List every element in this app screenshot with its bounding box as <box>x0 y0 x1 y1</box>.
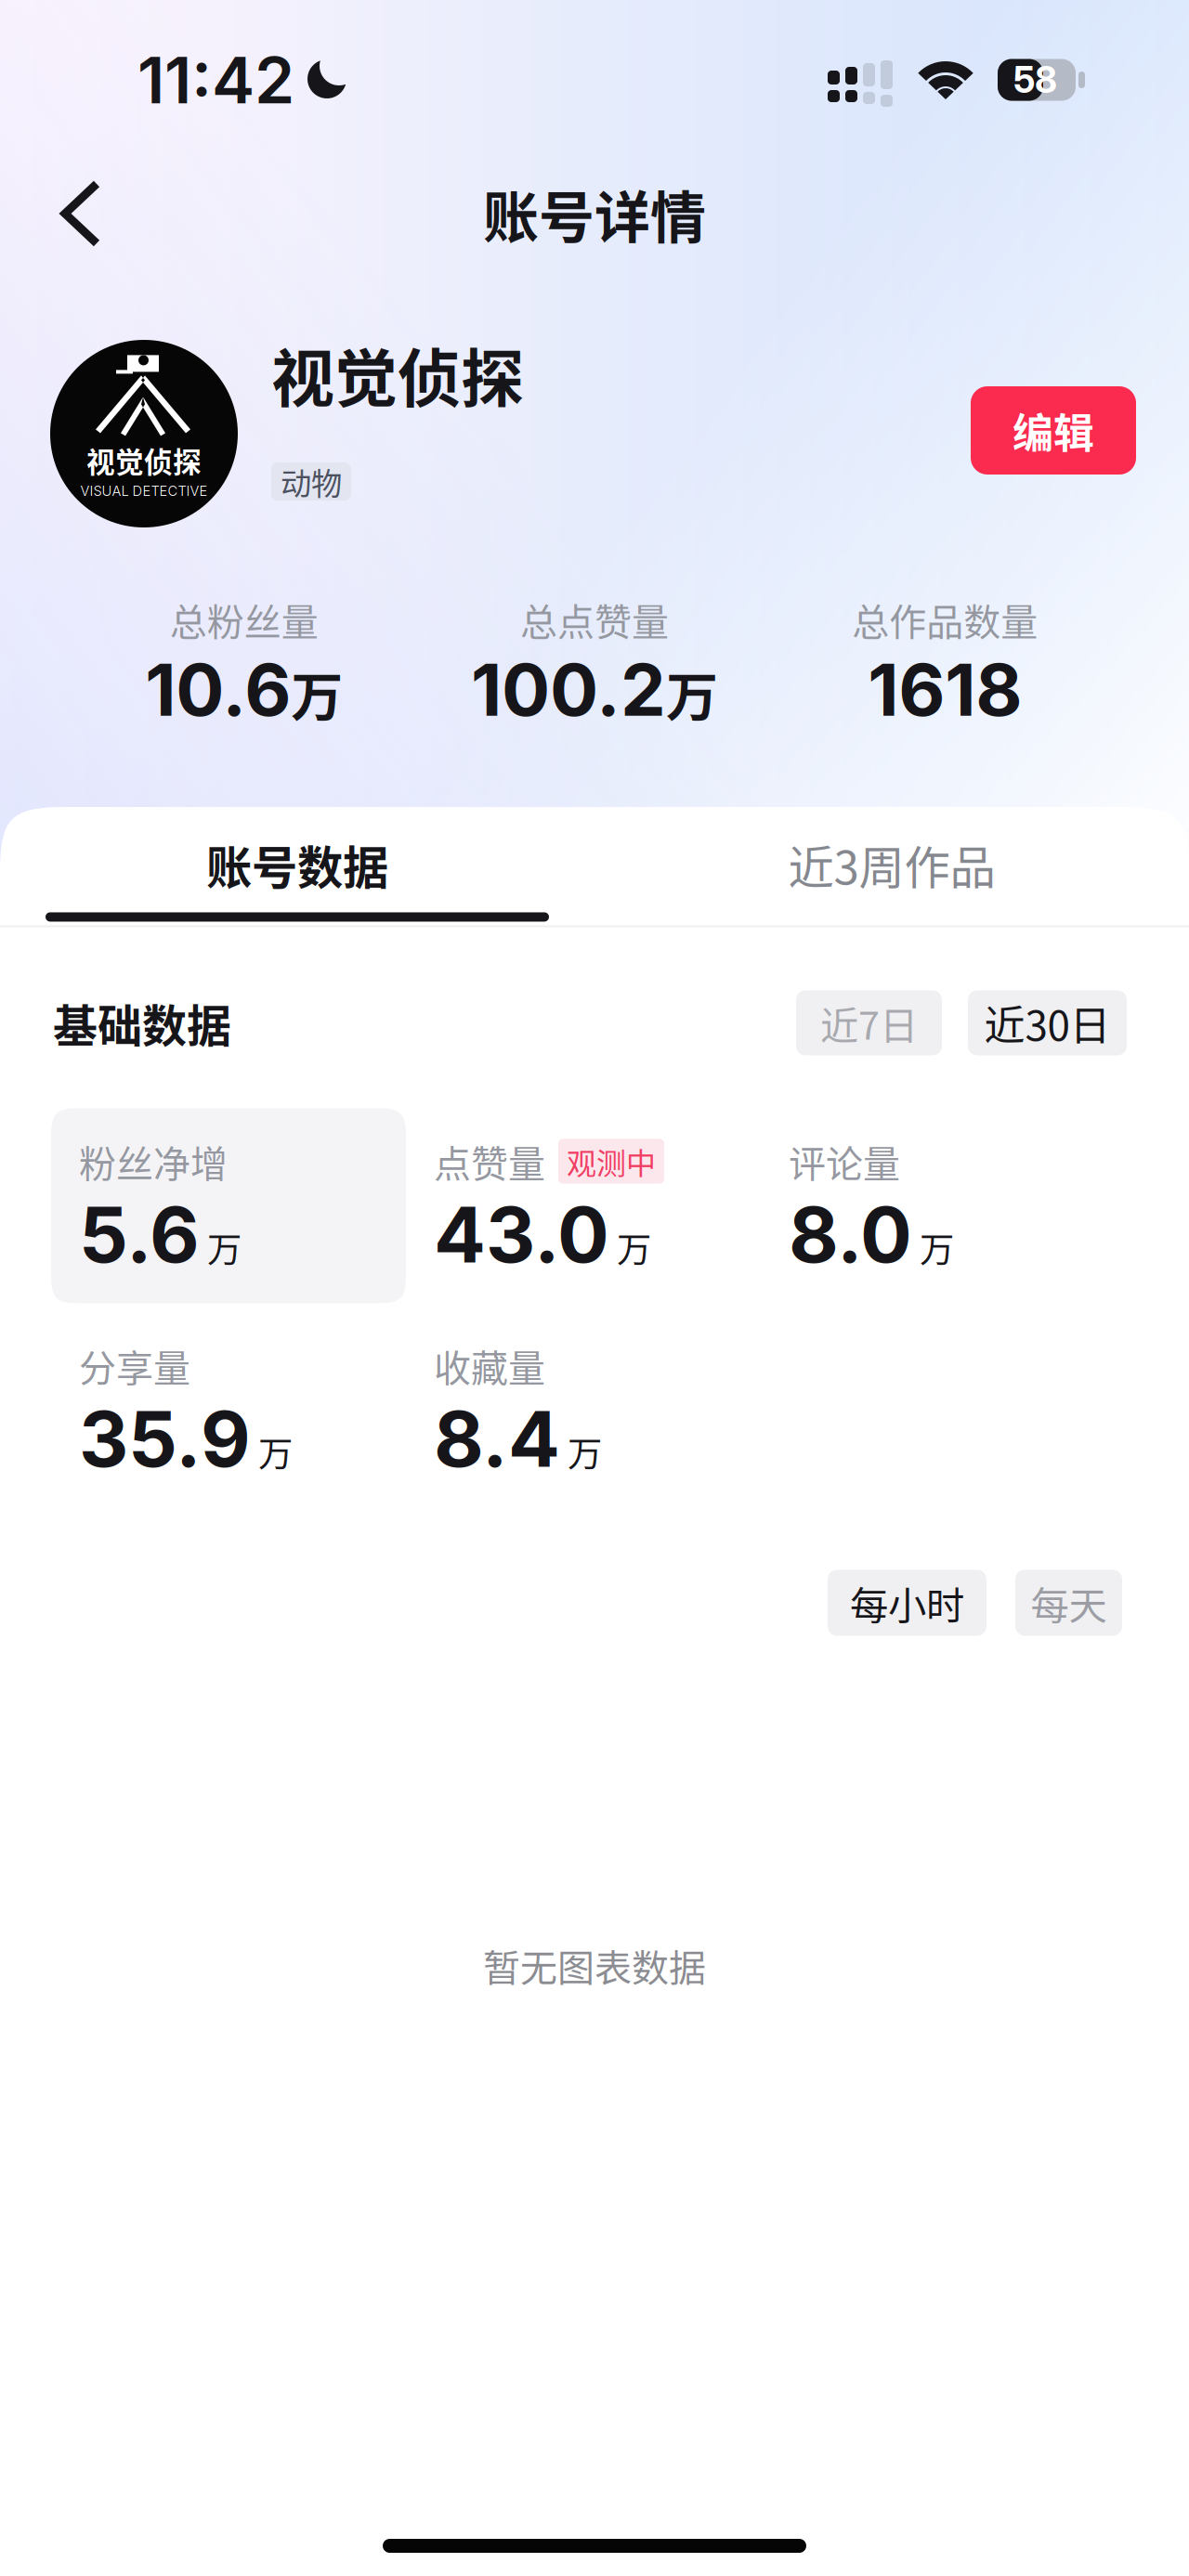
staticText: 每天 <box>1031 1575 1107 1631</box>
button[interactable]: 评论量 <box>761 1108 1116 1303</box>
staticText: 近30日 <box>984 993 1111 1052</box>
button[interactable]: 每小时 <box>828 1570 986 1636</box>
staticText: 动物 <box>281 459 342 504</box>
button[interactable]: 近30日 <box>968 990 1127 1055</box>
button[interactable]: 每天 <box>1015 1570 1122 1636</box>
button[interactable]: 分享量 <box>51 1313 406 1508</box>
staticText: 基础数据 <box>53 991 231 1055</box>
staticText: 万 <box>251 1427 293 1477</box>
staticText: 编辑 <box>1013 401 1094 460</box>
staticText: 10.6 <box>145 646 291 733</box>
staticText: 43.0 <box>434 1188 609 1281</box>
staticText: 分享量 <box>79 1339 190 1392</box>
staticText: 万 <box>666 656 718 731</box>
button[interactable]: 粉丝净增 <box>51 1108 406 1303</box>
staticText: VISUAL DETECTIVE <box>80 483 208 499</box>
staticText: 点赞量 <box>434 1134 545 1188</box>
staticText: 暂无图表数据 <box>483 1938 706 1992</box>
staticText: 35.9 <box>79 1392 251 1485</box>
staticText: 万 <box>609 1222 651 1272</box>
staticText: 万 <box>200 1222 242 1272</box>
staticText: 万 <box>912 1222 954 1272</box>
button[interactable]: 编辑 <box>971 386 1136 475</box>
staticText: 1618 <box>868 646 1022 733</box>
button[interactable]: 点赞量 <box>406 1108 761 1303</box>
staticText: 总点赞量 <box>520 592 669 646</box>
staticText: 近3周作品 <box>788 831 995 897</box>
staticText: 观测中 <box>567 1140 656 1183</box>
staticText: 账号详情 <box>483 173 706 254</box>
staticText: 58 <box>1013 58 1057 102</box>
staticText: 视觉侦探 <box>271 329 524 420</box>
staticText: 8.4 <box>434 1392 560 1485</box>
staticText: 8.0 <box>789 1188 912 1281</box>
staticText: 100.2 <box>471 646 666 733</box>
staticText: 账号数据 <box>206 831 388 897</box>
button[interactable]: 近3周作品 <box>594 807 1189 925</box>
staticText: 总作品数量 <box>852 592 1038 646</box>
staticText: 总粉丝量 <box>170 592 318 646</box>
button[interactable]: 收藏量 <box>406 1313 761 1508</box>
staticText: 近7日 <box>820 995 918 1051</box>
staticText: 收藏量 <box>434 1339 545 1392</box>
button[interactable]: 账号数据 <box>0 807 594 925</box>
staticText: 每小时 <box>850 1575 964 1631</box>
staticText: 5.6 <box>79 1188 200 1281</box>
staticText: 11:42 <box>137 41 294 119</box>
staticText: 万 <box>560 1427 602 1477</box>
staticText: 视觉侦探 <box>86 440 202 481</box>
staticText: 评论量 <box>789 1134 900 1188</box>
staticText: 万 <box>291 656 343 731</box>
button[interactable]: 近7日 <box>796 990 942 1055</box>
button[interactable]: 返回 <box>0 162 141 266</box>
staticText: 粉丝净增 <box>79 1134 228 1188</box>
